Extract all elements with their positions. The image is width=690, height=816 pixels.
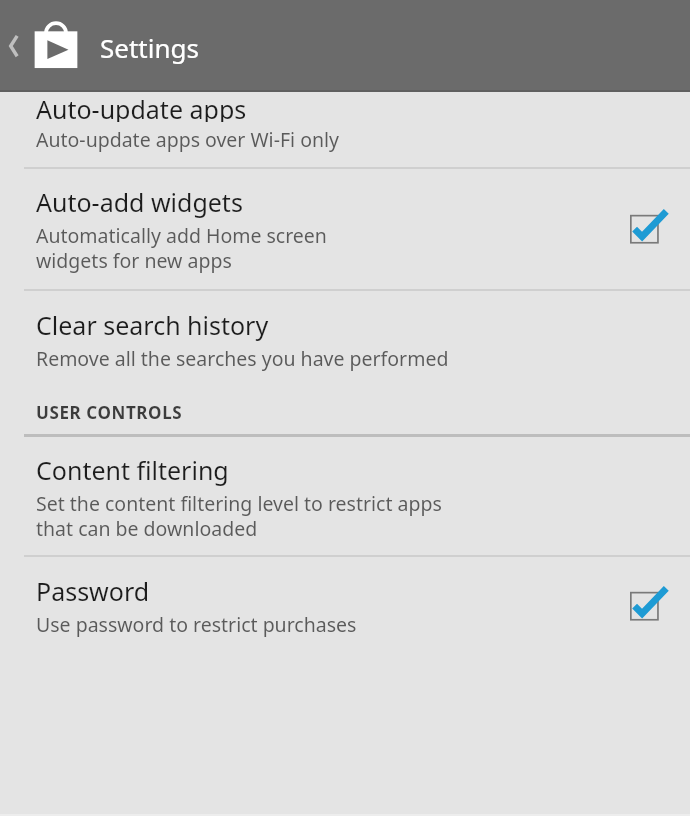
staticText: Auto-add widgets — [36, 185, 243, 219]
staticText: Settings — [100, 30, 199, 65]
staticText: Password — [36, 574, 150, 608]
staticText: USER CONTROLS — [36, 401, 183, 424]
staticText: Clear search history — [36, 308, 269, 342]
button[interactable]: Auto-add widgets — [0, 169, 690, 289]
staticText: Automatically add Home screen widgets fo… — [36, 222, 327, 273]
staticText: Content filtering — [36, 453, 229, 487]
button[interactable]: Content filtering — [0, 437, 690, 555]
staticText: Auto-update apps — [36, 92, 247, 122]
button[interactable]: Password — [0, 557, 690, 652]
staticText: Use password to restrict purchases — [36, 611, 357, 638]
staticText: Auto-update apps over Wi-Fi only — [36, 126, 339, 153]
button[interactable]: Back — [0, 0, 30, 92]
staticText: Set the content filtering level to restr… — [36, 490, 442, 541]
staticText: Remove all the searches you have perform… — [36, 345, 449, 372]
button[interactable]: Auto-update apps — [0, 92, 690, 167]
button[interactable]: Clear search history — [0, 291, 690, 387]
button[interactable]: Google Play Store — [30, 0, 80, 92]
